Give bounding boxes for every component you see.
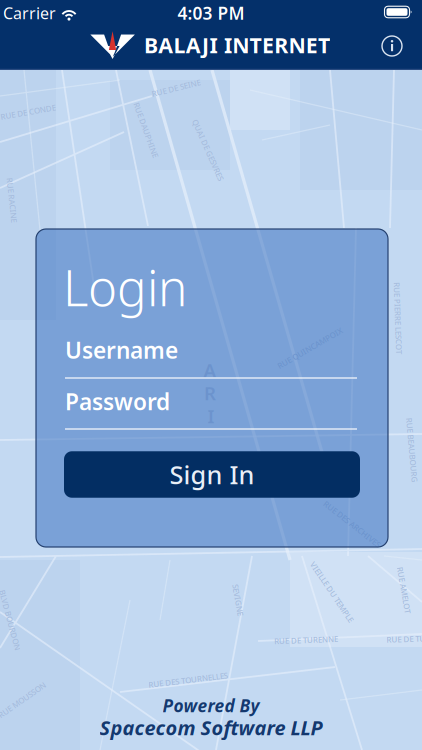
staticText: Spacecom Software LLP [99, 714, 322, 741]
staticText: QUAI DE GESVRES [175, 145, 241, 155]
staticText: A [203, 358, 216, 382]
staticText: Username [65, 335, 178, 365]
staticText: RUE DE TURENNE [274, 635, 338, 645]
button[interactable]: Password [65, 386, 357, 416]
staticText: RUE DAUPHINE [117, 125, 175, 135]
staticText: RUE DE TU [386, 634, 422, 644]
staticText: BALAJI INTERNET [144, 31, 330, 59]
staticText: SEVIGNE [222, 595, 254, 605]
staticText: Sign In [169, 458, 254, 491]
button[interactable]: Info [380, 34, 404, 58]
staticText: I [207, 404, 214, 428]
staticText: RUE BEAUBOURG [379, 445, 422, 455]
staticText: R [204, 381, 216, 405]
staticText: VIEILLE DU TEMPLE [296, 587, 367, 597]
staticText: 4:03 PM [177, 1, 244, 24]
staticText: RUE AMELOT [380, 585, 422, 595]
staticText: RUE DE CONDE [0, 107, 56, 117]
staticText: Login [63, 254, 187, 320]
staticText: Password [65, 386, 170, 416]
staticText: RUE RACINE [0, 195, 34, 205]
staticText: Carrier [3, 2, 56, 24]
staticText: RUE QUINCAMPOIX [273, 343, 347, 353]
button[interactable]: Username [65, 335, 357, 365]
staticText: RUE DE SEINE [151, 83, 201, 93]
button[interactable]: Sign In [64, 451, 360, 498]
staticText: BLVD BOURDON [0, 615, 41, 625]
staticText: RUE PIERRE LESCOT [362, 313, 422, 323]
staticText: RUE MOUSSON [0, 695, 50, 705]
staticText: RUE DES TOURNELLES [148, 675, 228, 685]
staticText: Powered By [162, 694, 259, 717]
